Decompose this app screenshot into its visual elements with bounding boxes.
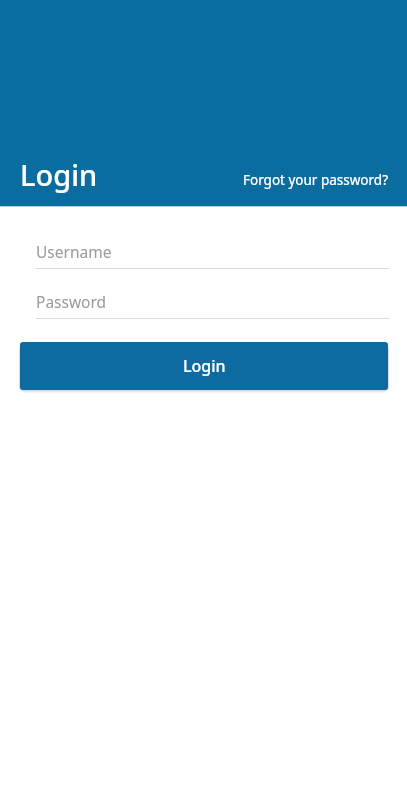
button[interactable]: Username xyxy=(36,235,389,269)
staticText: Password xyxy=(36,291,107,312)
button[interactable]: Forgot your password? xyxy=(99,176,388,194)
button[interactable]: Password xyxy=(36,285,389,319)
button[interactable]: Login xyxy=(20,342,388,390)
staticText: Login xyxy=(183,355,226,377)
staticText: Username xyxy=(36,241,112,262)
staticText: Forgot your password? xyxy=(242,171,388,189)
staticText: Login xyxy=(20,155,98,194)
